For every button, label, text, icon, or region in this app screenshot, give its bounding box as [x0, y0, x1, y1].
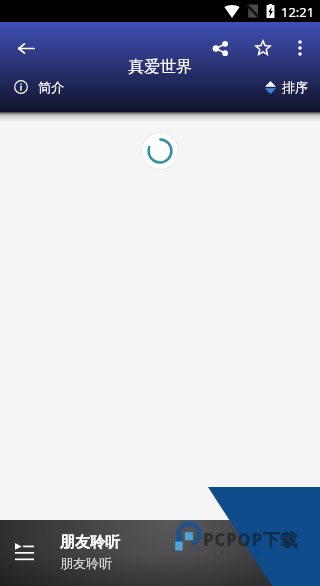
staticText: 朋友聆听 — [60, 555, 112, 571]
button[interactable]: 简介 — [0, 73, 72, 101]
button[interactable]: Favorite — [246, 31, 280, 65]
button[interactable]: More options — [283, 31, 317, 65]
button[interactable]: Share — [203, 31, 237, 65]
staticText: 12:21 — [281, 3, 315, 21]
staticText: 朋友聆听 — [60, 533, 120, 552]
button[interactable]: Back — [9, 32, 42, 65]
staticText: PCPOP.COM — [208, 549, 262, 557]
button[interactable]: 排序 — [257, 73, 320, 101]
staticText: 真爱世界 — [128, 57, 192, 77]
button[interactable]: Playlist — [15, 543, 34, 562]
staticText: 简介 — [38, 79, 64, 95]
staticText: PCPOP下载 — [203, 528, 299, 551]
staticText: 排序 — [282, 79, 308, 95]
